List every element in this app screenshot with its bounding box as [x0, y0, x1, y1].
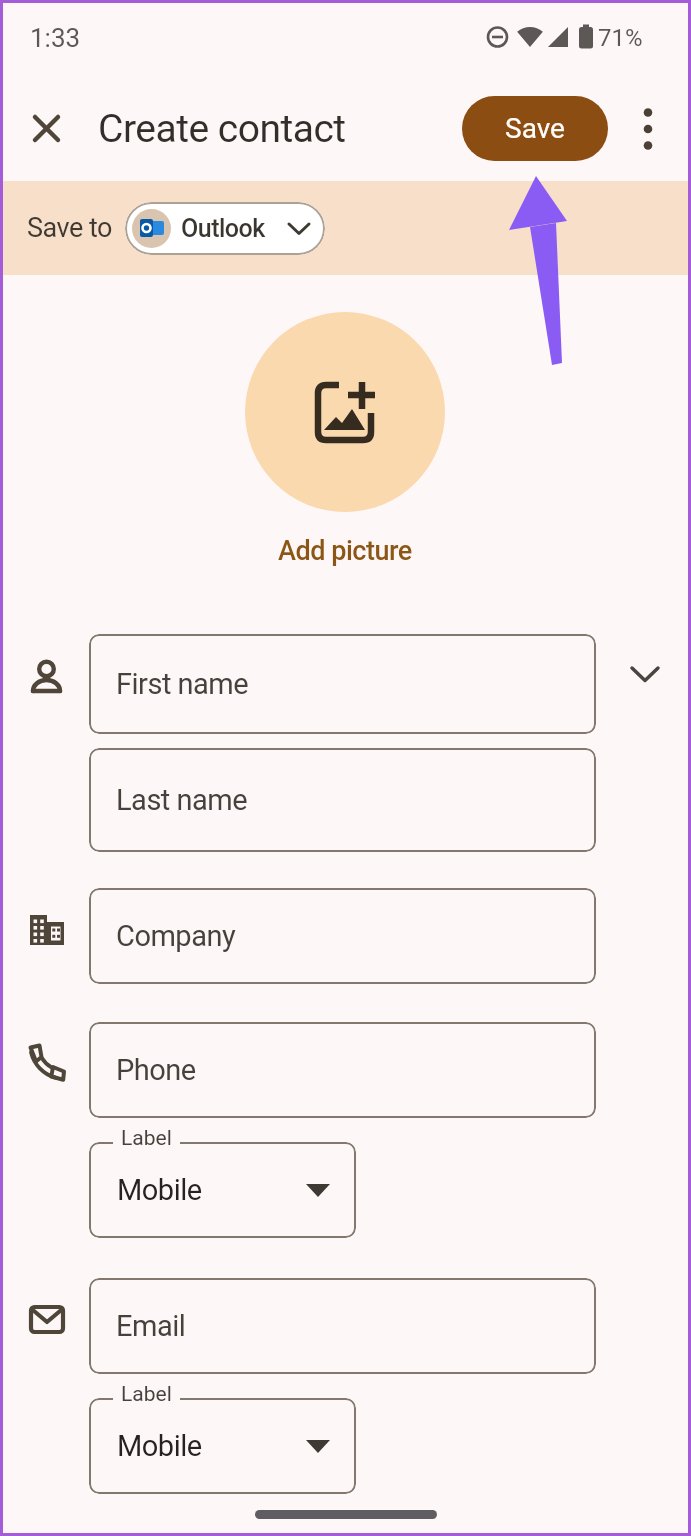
staticText: 71%: [598, 24, 643, 52]
button[interactable]: [620, 650, 670, 698]
button[interactable]: Save: [462, 96, 608, 161]
staticText: Save to: [27, 212, 112, 244]
staticText: Email: [116, 1309, 186, 1343]
staticText: 1:33: [30, 23, 81, 53]
staticText: Mobile: [117, 1429, 202, 1463]
button[interactable]: Phone: [89, 1022, 596, 1118]
button[interactable]: Mobile: [89, 1142, 356, 1238]
staticText: Add picture: [278, 535, 412, 567]
button[interactable]: Add picture: [230, 528, 460, 574]
button[interactable]: First name: [89, 634, 596, 734]
staticText: Phone: [116, 1053, 196, 1087]
staticText: Save: [505, 112, 565, 145]
staticText: First name: [116, 667, 249, 701]
button[interactable]: Last name: [89, 748, 596, 852]
staticText: Last name: [116, 783, 248, 817]
staticText: Label: [121, 1382, 172, 1407]
staticText: Create contact: [98, 106, 346, 152]
staticText: Company: [116, 919, 236, 953]
button[interactable]: Email: [89, 1278, 596, 1374]
button[interactable]: Mobile: [89, 1398, 356, 1494]
button[interactable]: [628, 105, 668, 153]
button[interactable]: [245, 312, 445, 512]
button[interactable]: Outlook: [125, 202, 325, 255]
button[interactable]: [23, 105, 71, 153]
staticText: Outlook: [181, 214, 265, 243]
button[interactable]: Company: [89, 888, 596, 984]
staticText: Label: [121, 1126, 172, 1151]
staticText: Mobile: [117, 1173, 202, 1207]
